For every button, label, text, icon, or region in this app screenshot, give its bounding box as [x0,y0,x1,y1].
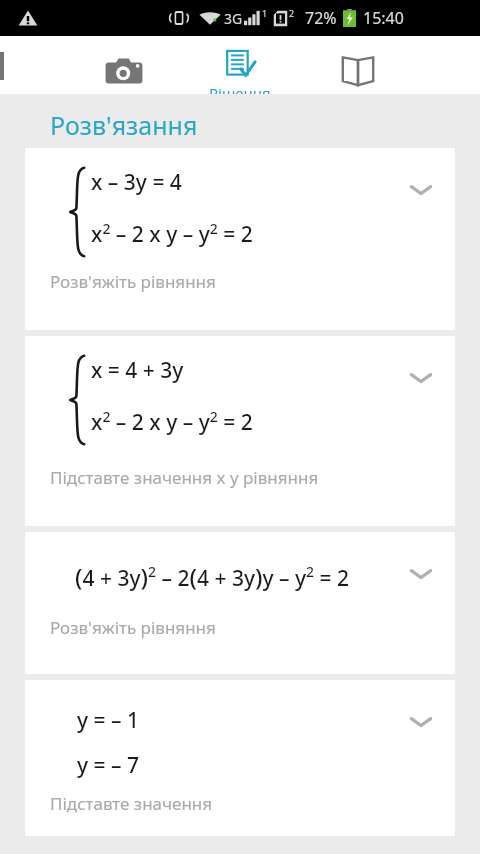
staticText: x – 3y = 4 [91,168,182,197]
staticText: Розв'яжіть рівняння [50,616,216,639]
staticText: 15:40 [363,7,404,29]
staticText: x2 – 2 x y – y2 = 2 [91,219,253,248]
staticText: 72% [305,7,337,29]
staticText: Рішення [209,83,271,103]
staticText: (4 + 3y)2 – 2(4 + 3y)y – y2 = 2 [75,560,350,593]
button[interactable]: Розгорнути [401,358,441,398]
staticText: Розв'язання [50,108,198,142]
button[interactable]: Розгорнути [401,702,441,742]
button[interactable]: y = – 1 [25,680,455,836]
button[interactable]: Рішення [182,36,298,112]
button[interactable]: Розгорнути [401,170,441,210]
button[interactable]: Камера [66,36,182,112]
staticText: 1 [262,7,268,19]
staticText: y = – 1 [77,706,139,735]
staticText: Розв'яжіть рівняння [50,270,216,293]
button[interactable]: Розгорнути [401,554,441,594]
staticText: Підставте значення x у рівняння [50,466,319,489]
staticText: y = – 7 [77,751,139,780]
button[interactable]: x – 3y = 4 [25,148,455,330]
staticText: 3G [224,9,243,28]
staticText: Підставте значення [50,792,213,815]
button[interactable]: (4 + 3y)2 – 2(4 + 3y)y – y2 = 2 [25,532,455,674]
button[interactable]: x = 4 + 3y [25,336,455,526]
staticText: x2 – 2 x y – y2 = 2 [91,407,253,436]
staticText: x = 4 + 3y [91,356,184,385]
staticText: 2 [289,7,295,19]
button[interactable]: Підручник [300,36,416,112]
